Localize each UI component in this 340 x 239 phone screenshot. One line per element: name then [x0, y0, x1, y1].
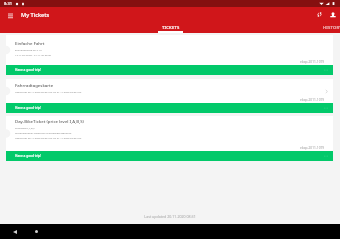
button[interactable]: HISTORY — [301, 22, 340, 33]
button[interactable]: Back — [8, 225, 21, 238]
staticText: Last updated 20.11.2020 08:31 — [0, 214, 340, 219]
button[interactable]: Have a good trip! — [6, 103, 333, 113]
button[interactable]: More options — [322, 66, 330, 74]
button[interactable]: Open navigation menu — [4, 9, 16, 21]
button[interactable]: Refresh — [313, 8, 326, 21]
staticText: Fahrradtageskarte — [15, 82, 54, 88]
staticText: Erw. BahnCard 50 2. Kl. — [15, 48, 43, 51]
button[interactable]: TICKETS — [139, 22, 202, 33]
button[interactable]: Have a good trip! — [6, 151, 333, 161]
button[interactable]: More options — [322, 152, 330, 160]
staticText: My Tickets — [21, 11, 50, 19]
staticText: 14.11.20 23:00 - 21.11.20 02:00 — [15, 53, 52, 56]
button[interactable]: Fahrradtageskarte — [6, 79, 333, 103]
staticText: Starthaltestelle: Osterholz-Scharmbeck B… — [15, 131, 72, 134]
staticText: Valid from 20.11.2020 00:00 Uhr till 21.… — [15, 90, 82, 93]
staticText: ebap-2011-1079 — [300, 146, 325, 150]
button[interactable]: Account — [326, 8, 339, 21]
staticText: Valid from 20.11.2020 09:00 Uhr till 21.… — [15, 136, 82, 139]
button[interactable]: Einfache Fahrt — [6, 35, 333, 65]
staticText: 8:31 — [4, 1, 12, 6]
staticText: Have a good trip! — [15, 106, 42, 110]
staticText: Day-BikeTicket (price level I,A,B,S) — [15, 118, 84, 124]
staticText: ebap-2011-1079 — [300, 60, 325, 64]
staticText: Have a good trip! — [15, 68, 42, 72]
staticText: HISTORY — [323, 25, 340, 31]
staticText: Have a good trip! — [15, 154, 42, 158]
button[interactable]: Day-BikeTicket (price level I,A,B,S) — [6, 116, 333, 151]
staticText: ebap-2011-1079 — [300, 98, 325, 102]
staticText: TICKETS — [162, 25, 180, 31]
staticText: Einfache Fahrt — [15, 40, 45, 46]
button[interactable]: More options — [322, 104, 330, 112]
button[interactable]: Have a good trip! — [6, 65, 333, 75]
staticText: Preisstufe I,A,B,S — [15, 126, 35, 129]
button[interactable]: Home — [30, 225, 43, 238]
